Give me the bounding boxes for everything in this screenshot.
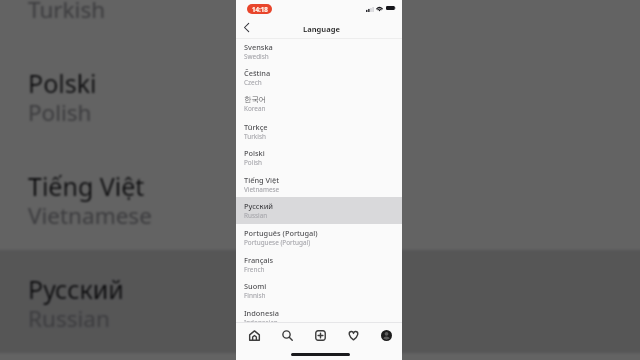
button[interactable]: Français (236, 251, 402, 278)
staticText: Português (Portugal) (244, 228, 318, 238)
staticText: Polski (28, 66, 97, 100)
button[interactable]: Profile (377, 326, 395, 344)
button[interactable]: Activity (344, 326, 362, 344)
button[interactable]: Indonesia (236, 304, 402, 331)
staticText: Korean (244, 104, 266, 113)
staticText: Indonesia (244, 308, 280, 318)
staticText: Svenska (244, 42, 273, 52)
staticText: 한국어 (244, 95, 267, 104)
staticText: Swedish (244, 52, 269, 61)
button[interactable]: Tiếng Việt (236, 171, 402, 198)
button[interactable]: Create (311, 326, 329, 344)
staticText: Türkçe (244, 122, 268, 132)
staticText: 14:18 (252, 5, 268, 13)
staticText: Language (303, 24, 340, 34)
staticText: Русский (28, 272, 124, 306)
staticText: Русский (244, 201, 274, 211)
staticText: Vietnamese (244, 185, 280, 194)
button[interactable]: Polski (236, 144, 402, 171)
staticText: Czech (244, 78, 262, 87)
staticText: Russian (244, 211, 268, 220)
button[interactable]: Home (245, 326, 263, 344)
staticText: Finnish (244, 291, 266, 300)
staticText: Tiếng Việt (28, 169, 145, 203)
button[interactable]: Русский (236, 197, 402, 224)
button[interactable]: Svenska (236, 38, 402, 65)
staticText: Tiếng Việt (244, 175, 280, 185)
staticText: Russian (28, 303, 110, 334)
button[interactable]: Search (278, 326, 296, 344)
staticText: Turkish (28, 0, 106, 25)
staticText: Čeština (244, 68, 271, 78)
staticText: Vietnamese (28, 200, 152, 231)
button[interactable]: Türkçe (236, 118, 402, 145)
button[interactable]: Suomi (236, 277, 402, 304)
staticText: Polski (244, 148, 265, 158)
button[interactable]: Back (238, 19, 254, 35)
staticText: Suomi (244, 281, 267, 291)
staticText: Polish (244, 158, 263, 167)
staticText: Polish (28, 97, 92, 128)
staticText: Turkish (244, 132, 266, 141)
staticText: Français (244, 255, 274, 265)
staticText: French (244, 265, 265, 274)
button[interactable]: 한국어 (236, 91, 402, 118)
staticText: Indonesian (244, 318, 278, 327)
staticText: Portuguese (Portugal) (244, 238, 311, 247)
button[interactable]: Čeština (236, 64, 402, 91)
button[interactable]: Português (Portugal) (236, 224, 402, 251)
